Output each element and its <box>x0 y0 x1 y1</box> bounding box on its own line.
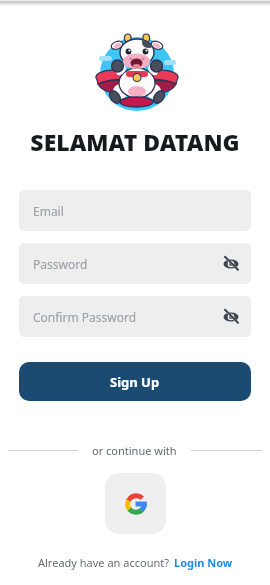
button[interactable]: Confirm Password <box>19 296 251 337</box>
button[interactable]: Email <box>19 190 251 231</box>
staticText: Already have an account? <box>38 555 169 570</box>
staticText: or continue with <box>92 443 177 458</box>
staticText: SELAMAT DATANG <box>0 126 270 157</box>
button[interactable]: Already have an account? <box>38 555 233 570</box>
button[interactable]: Password <box>19 243 251 284</box>
staticText: Login Now <box>174 555 233 570</box>
staticText: Email <box>33 203 64 219</box>
button[interactable]: Sign Up <box>19 362 251 401</box>
staticText: Confirm Password <box>33 309 137 325</box>
staticText: Password <box>33 256 88 272</box>
button[interactable] <box>105 473 166 534</box>
staticText: Sign Up <box>110 373 160 391</box>
